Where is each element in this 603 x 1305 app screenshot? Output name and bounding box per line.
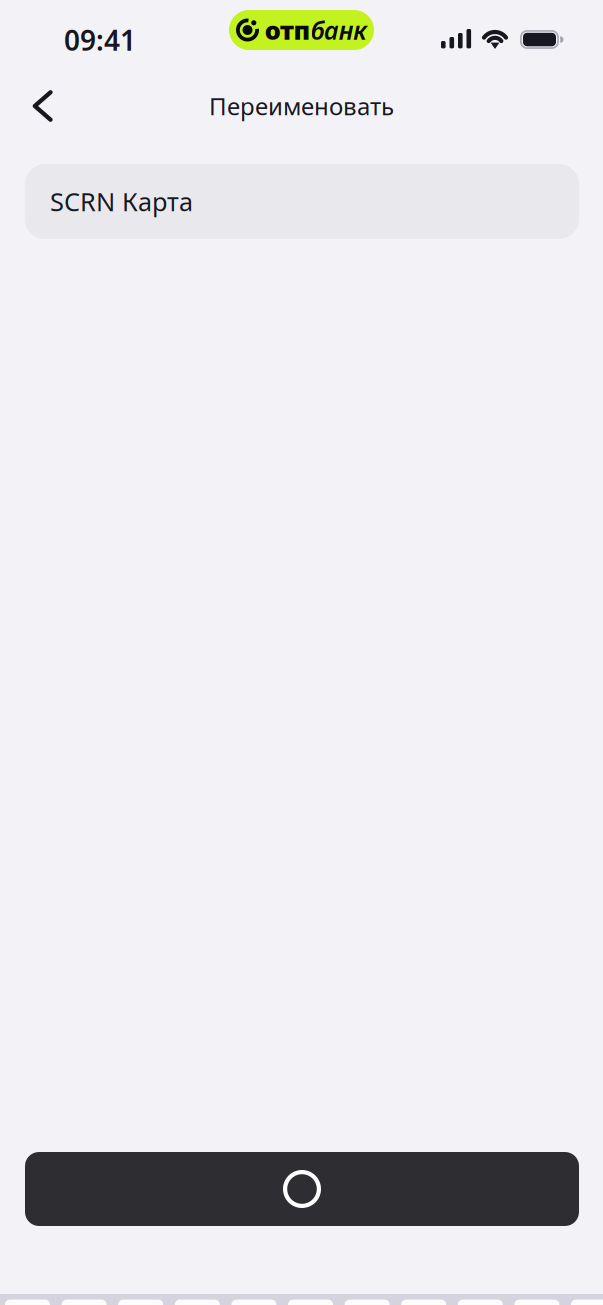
staticText: 09:41 [64,21,136,59]
button[interactable]: Save [25,1152,579,1226]
staticText: Переименовать [209,90,394,122]
staticText: банк [310,13,367,47]
button[interactable]: Back [15,78,71,134]
staticText: отп [265,13,310,47]
button[interactable]: SCRN Карта [25,164,579,239]
staticText: SCRN Карта [50,185,193,218]
